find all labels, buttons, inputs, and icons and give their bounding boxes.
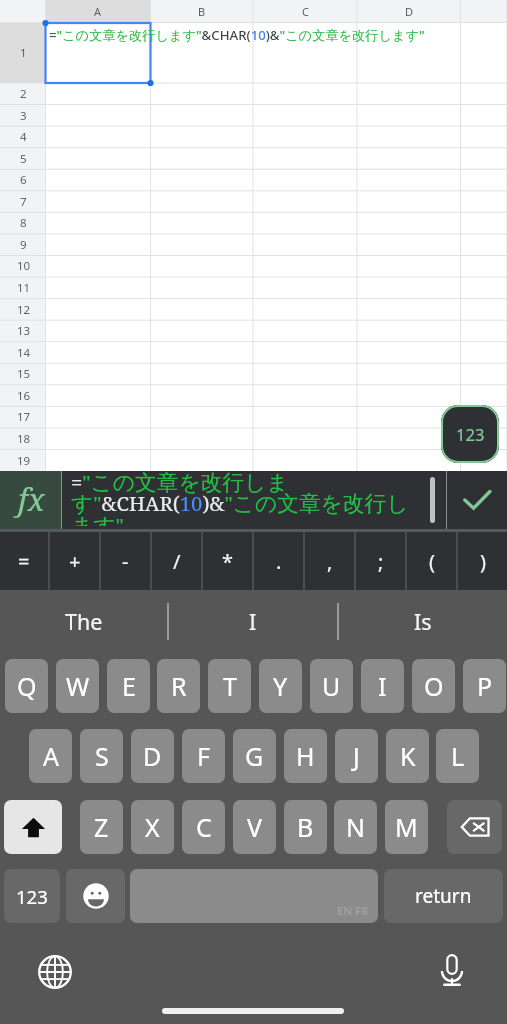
button[interactable]: J bbox=[335, 729, 378, 783]
button[interactable]: W bbox=[56, 659, 99, 713]
button[interactable]: Q bbox=[5, 659, 48, 713]
button[interactable]: ) bbox=[458, 532, 507, 590]
button[interactable]: 10 bbox=[1, 255, 46, 277]
button[interactable]: return bbox=[384, 869, 503, 923]
staticText: 11 bbox=[17, 280, 31, 296]
button[interactable]: L bbox=[436, 729, 479, 783]
staticText: D bbox=[405, 4, 414, 19]
button[interactable]: 12 bbox=[1, 299, 46, 321]
button[interactable]: Shift bbox=[4, 800, 62, 854]
button[interactable]: T bbox=[208, 659, 251, 713]
button[interactable]: M bbox=[385, 800, 428, 854]
button[interactable]: Is bbox=[339, 589, 507, 653]
button[interactable]: + bbox=[50, 532, 99, 590]
staticText: . bbox=[276, 548, 282, 575]
staticText: 8 bbox=[20, 215, 27, 231]
button[interactable]: 1 bbox=[1, 23, 46, 83]
staticText: 19 bbox=[17, 453, 31, 469]
button[interactable]: 14 bbox=[1, 342, 46, 364]
button[interactable]: A bbox=[73, 0, 123, 23]
button[interactable]: I bbox=[361, 659, 404, 713]
button[interactable]: R bbox=[157, 659, 200, 713]
button[interactable]: 19 bbox=[1, 450, 46, 472]
button[interactable]: Functions bbox=[0, 471, 61, 529]
button[interactable]: F bbox=[182, 729, 225, 783]
button[interactable]: S bbox=[80, 729, 123, 783]
staticText: F bbox=[197, 739, 210, 773]
button[interactable]: N bbox=[334, 800, 377, 854]
button[interactable]: B bbox=[177, 0, 227, 23]
button[interactable]: A bbox=[29, 729, 72, 783]
button[interactable]: Change language bbox=[27, 944, 83, 1000]
staticText: B bbox=[198, 4, 206, 19]
button[interactable]: H bbox=[284, 729, 327, 783]
button[interactable]: 8 bbox=[1, 212, 46, 234]
button[interactable]: I bbox=[169, 589, 337, 653]
button[interactable]: 7 bbox=[1, 191, 46, 213]
staticText: I bbox=[378, 669, 387, 703]
button[interactable]: 3 bbox=[1, 105, 46, 127]
button[interactable]: V bbox=[233, 800, 276, 854]
staticText: Is bbox=[414, 607, 432, 636]
button[interactable]: The bbox=[0, 589, 167, 653]
button[interactable]: E bbox=[107, 659, 150, 713]
button[interactable]: 6 bbox=[1, 169, 46, 191]
button[interactable]: ; bbox=[356, 532, 405, 590]
button[interactable]: O bbox=[412, 659, 455, 713]
button[interactable]: 15 bbox=[1, 363, 46, 385]
staticText: 1 bbox=[20, 45, 27, 61]
button[interactable]: 18 bbox=[1, 428, 46, 450]
staticText: 18 bbox=[17, 431, 31, 447]
button[interactable]: ( bbox=[407, 532, 456, 590]
button[interactable]: , bbox=[305, 532, 354, 590]
button[interactable]: 11 bbox=[1, 277, 46, 299]
button[interactable]: Emoji bbox=[66, 869, 125, 923]
button[interactable]: Backspace bbox=[447, 800, 502, 854]
button[interactable]: C bbox=[182, 800, 225, 854]
button[interactable]: Space bbox=[130, 869, 378, 923]
button[interactable]: K bbox=[386, 729, 429, 783]
staticText: C bbox=[196, 810, 212, 844]
staticText: T bbox=[223, 669, 237, 703]
button[interactable]: 5 bbox=[1, 148, 46, 170]
staticText: 15 bbox=[17, 366, 31, 382]
button[interactable]: G bbox=[233, 729, 276, 783]
staticText: O bbox=[424, 669, 444, 703]
staticText: L bbox=[451, 739, 465, 773]
button[interactable]: B bbox=[284, 800, 327, 854]
staticText: = bbox=[18, 548, 30, 575]
button[interactable]: 123 bbox=[4, 869, 60, 923]
button[interactable]: D bbox=[131, 729, 174, 783]
button[interactable]: Voice input bbox=[424, 943, 480, 999]
button[interactable]: 17 bbox=[1, 406, 46, 428]
staticText: 123 bbox=[16, 884, 48, 909]
button[interactable]: - bbox=[101, 532, 150, 590]
button[interactable]: / bbox=[152, 532, 201, 590]
button[interactable]: D bbox=[384, 0, 434, 23]
staticText: 2 bbox=[20, 86, 27, 102]
staticText: A bbox=[94, 4, 102, 19]
button[interactable]: 16 bbox=[1, 385, 46, 407]
button[interactable]: * bbox=[203, 532, 252, 590]
button[interactable]: X bbox=[131, 800, 174, 854]
button[interactable]: P bbox=[463, 659, 506, 713]
staticText: , bbox=[327, 548, 333, 575]
button[interactable]: Y bbox=[259, 659, 302, 713]
button[interactable]: C bbox=[280, 0, 330, 23]
staticText: 4 bbox=[20, 129, 27, 145]
button[interactable]: = bbox=[0, 532, 48, 590]
staticText: H bbox=[296, 739, 315, 773]
staticText: K bbox=[400, 739, 416, 773]
button[interactable]: Number keypad bbox=[441, 405, 499, 463]
button[interactable]: 2 bbox=[1, 83, 46, 105]
button[interactable]: 13 bbox=[1, 320, 46, 342]
button[interactable]: 4 bbox=[1, 126, 46, 148]
button[interactable]: . bbox=[254, 532, 303, 590]
button[interactable]: U bbox=[310, 659, 353, 713]
button[interactable]: Z bbox=[80, 800, 123, 854]
button[interactable]: 9 bbox=[1, 234, 46, 256]
staticText: The bbox=[65, 607, 103, 636]
staticText: 7 bbox=[20, 194, 27, 210]
staticText: S bbox=[95, 739, 109, 773]
button[interactable]: Accept bbox=[447, 471, 507, 529]
